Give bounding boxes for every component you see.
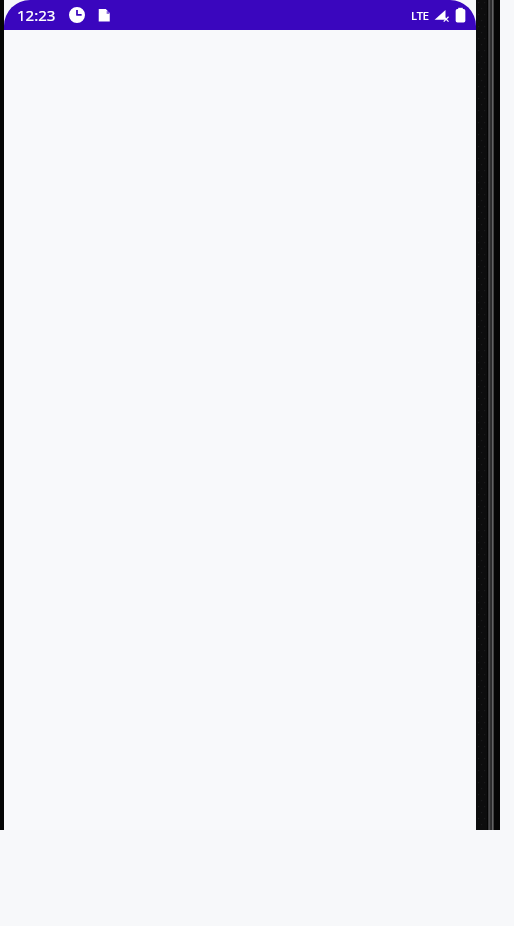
other: Battery full xyxy=(455,6,466,24)
other: SD card xyxy=(96,7,112,23)
staticText: LTE xyxy=(411,8,429,23)
other: Alarm set xyxy=(69,7,85,23)
staticText: 12:23 xyxy=(17,5,56,25)
other: No mobile signal xyxy=(433,7,449,23)
